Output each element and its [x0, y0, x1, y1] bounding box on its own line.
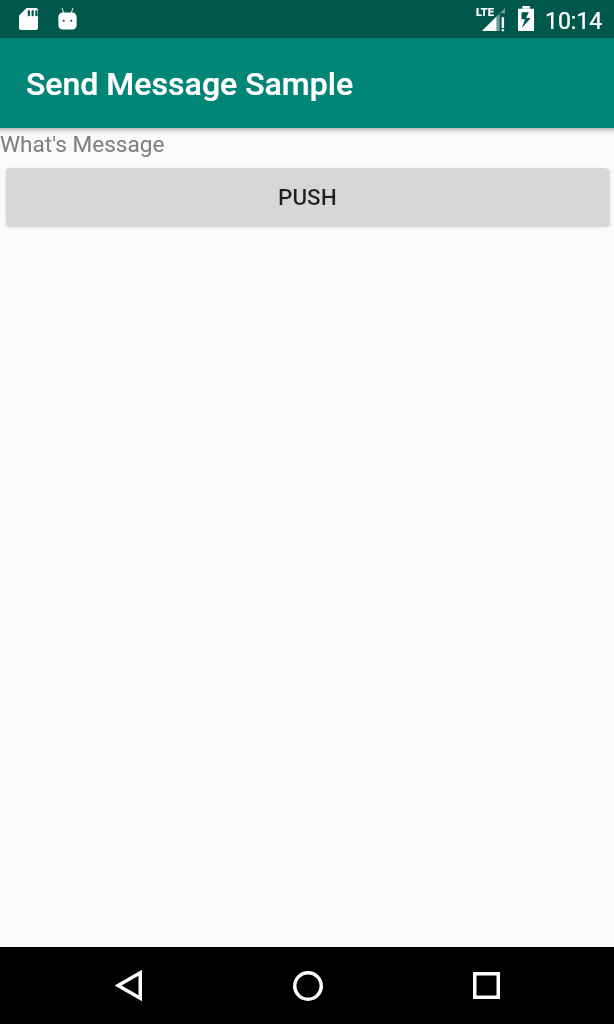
- button[interactable]: Home: [269, 947, 346, 1024]
- button[interactable]: Back: [90, 947, 167, 1024]
- staticText: 10:14: [545, 8, 603, 35]
- staticText: Send Message Sample: [26, 65, 354, 103]
- staticText: LTE: [476, 6, 494, 19]
- button[interactable]: PUSH: [6, 168, 608, 226]
- staticText: What's Message: [0, 131, 165, 157]
- staticText: PUSH: [278, 184, 337, 210]
- button[interactable]: What's Message: [0, 128, 614, 160]
- button[interactable]: Recent apps: [448, 947, 525, 1024]
